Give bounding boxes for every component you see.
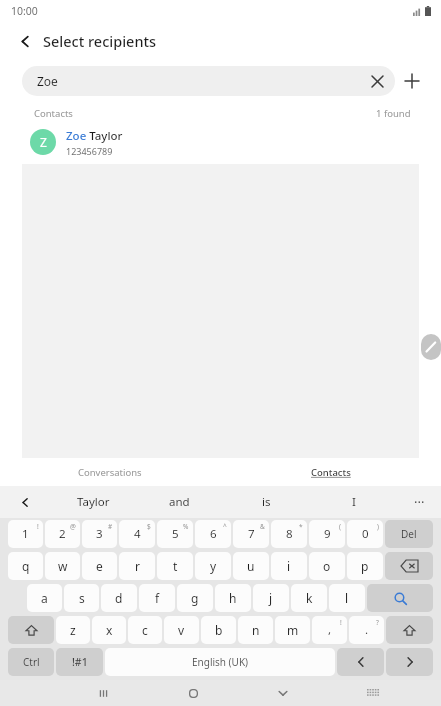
button[interactable]: English (UK)	[105, 648, 335, 676]
button[interactable]: c	[128, 616, 162, 644]
button[interactable]: .	[349, 616, 384, 644]
button[interactable]: y	[195, 552, 231, 580]
button[interactable]: Recents	[58, 680, 148, 706]
staticText: 7	[248, 526, 255, 542]
button[interactable]: o	[309, 552, 345, 580]
button[interactable]: Z	[30, 124, 441, 160]
button[interactable]: Zoe	[22, 66, 395, 96]
staticText: w	[58, 558, 68, 574]
button[interactable]: Clear	[363, 67, 391, 95]
staticText: ···	[414, 493, 425, 511]
button[interactable]: 7	[233, 520, 269, 548]
button[interactable]: e	[82, 552, 117, 580]
button[interactable]	[386, 616, 433, 644]
button[interactable]	[386, 648, 433, 676]
button[interactable]: t	[157, 552, 193, 580]
button[interactable]: 2	[45, 520, 80, 548]
staticText: i	[287, 558, 291, 574]
staticText: &	[260, 522, 265, 531]
button[interactable]: p	[347, 552, 383, 580]
button[interactable]: Conversations	[0, 458, 220, 486]
button[interactable]: and	[136, 486, 223, 518]
staticText: y	[210, 558, 217, 574]
button[interactable]: Home	[148, 680, 238, 706]
button[interactable]: 6	[195, 520, 231, 548]
staticText: 6	[210, 526, 217, 542]
staticText: u	[247, 558, 255, 574]
staticText: e	[96, 558, 103, 574]
staticText: .	[365, 622, 369, 638]
button[interactable]	[8, 616, 54, 644]
button[interactable]: n	[238, 616, 273, 644]
staticText: g	[191, 590, 199, 606]
button[interactable]: d	[101, 584, 137, 612]
button[interactable]: is	[223, 486, 310, 518]
button[interactable]: 4	[119, 520, 155, 548]
button[interactable]: Add recipient	[395, 64, 429, 98]
button[interactable]: Del	[385, 520, 433, 548]
staticText: !#1	[72, 655, 88, 669]
staticText: v	[178, 622, 185, 638]
button[interactable]: 8	[271, 520, 307, 548]
button[interactable]: Keyboard settings	[328, 680, 418, 706]
staticText: Ctrl	[23, 655, 40, 669]
button[interactable]: v	[164, 616, 199, 644]
button[interactable]	[367, 584, 433, 612]
staticText: English (UK)	[192, 655, 249, 669]
staticText: x	[106, 622, 113, 638]
button[interactable]: s	[64, 584, 99, 612]
button[interactable]: Contacts	[220, 458, 441, 486]
button[interactable]: Previous	[0, 486, 50, 518]
staticText: ^	[223, 522, 227, 531]
button[interactable]: 0	[347, 520, 383, 548]
button[interactable]: h	[215, 584, 251, 612]
button[interactable]	[337, 648, 384, 676]
button[interactable]: 5	[157, 520, 193, 548]
staticText: 1	[22, 526, 29, 542]
staticText: f	[155, 590, 160, 606]
button[interactable]: g	[177, 584, 213, 612]
button[interactable]: f	[139, 584, 175, 612]
button[interactable]: ,	[312, 616, 347, 644]
staticText: z	[70, 622, 76, 638]
staticText: o	[323, 558, 331, 574]
button[interactable]: k	[291, 584, 327, 612]
staticText: Z	[40, 134, 47, 150]
button[interactable]: i	[271, 552, 307, 580]
button[interactable]: Hide keyboard	[238, 680, 328, 706]
staticText: Conversations	[78, 466, 142, 479]
staticText: Del	[401, 527, 417, 541]
staticText: ?	[376, 618, 379, 627]
staticText: h	[229, 590, 237, 606]
button[interactable]: More	[397, 486, 441, 518]
staticText: Select recipients	[43, 31, 157, 51]
button[interactable]: Taylor	[50, 486, 136, 518]
button[interactable]: m	[275, 616, 310, 644]
button[interactable]: Compose	[421, 334, 441, 360]
button[interactable]: !#1	[56, 648, 103, 676]
button[interactable]: 1	[8, 520, 43, 548]
staticText: 5	[172, 526, 179, 542]
button[interactable]	[385, 552, 433, 580]
staticText: !	[37, 522, 39, 531]
button[interactable]: Back	[10, 26, 40, 56]
staticText: !	[340, 618, 342, 627]
button[interactable]: z	[56, 616, 90, 644]
staticText: m	[287, 622, 299, 638]
button[interactable]: 9	[309, 520, 345, 548]
button[interactable]: Ctrl	[8, 648, 54, 676]
button[interactable]: I	[310, 486, 397, 518]
button[interactable]: u	[233, 552, 269, 580]
staticText: #	[108, 522, 113, 531]
button[interactable]: r	[119, 552, 155, 580]
button[interactable]: j	[253, 584, 289, 612]
button[interactable]: q	[8, 552, 43, 580]
button[interactable]: a	[27, 584, 62, 612]
button[interactable]: 3	[82, 520, 117, 548]
button[interactable]: b	[201, 616, 236, 644]
button[interactable]: w	[45, 552, 80, 580]
staticText: and	[169, 494, 190, 510]
button[interactable]: x	[92, 616, 126, 644]
button[interactable]: l	[329, 584, 365, 612]
staticText: 2	[59, 526, 66, 542]
